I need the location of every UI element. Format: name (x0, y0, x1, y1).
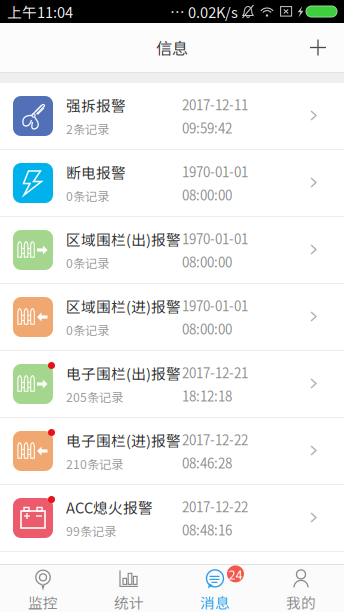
staticText: 1970-01-01 (182, 229, 248, 248)
staticText: 区域围栏(出)报警 (66, 228, 181, 250)
button[interactable]: 我的 (258, 565, 344, 612)
staticText: 上午11:04 (7, 1, 73, 22)
staticText: 1970-01-01 (182, 296, 248, 315)
staticText: 2条记录 (66, 120, 109, 137)
staticText: 210条记录 (66, 455, 123, 472)
staticText: 08:00:00 (182, 319, 232, 338)
staticText: 2017-12-22 (182, 497, 248, 516)
staticText: 监控 (28, 591, 58, 612)
staticText: 统计 (114, 591, 144, 612)
staticText: 205条记录 (66, 388, 123, 405)
button[interactable]: Add (296, 25, 340, 69)
button[interactable]: 统计 (86, 565, 172, 612)
staticText: 0条记录 (66, 321, 109, 338)
staticText: 我的 (286, 591, 316, 612)
staticText: 08:46:28 (182, 453, 232, 472)
button[interactable]: 24 (172, 565, 258, 612)
staticText: 信息 (156, 36, 188, 59)
staticText: 08:48:16 (182, 520, 232, 539)
staticText: 1970-01-01 (182, 162, 248, 181)
staticText: 电子围栏(出)报警 (66, 362, 181, 384)
staticText: 08:00:00 (182, 185, 232, 204)
staticText: ACC熄火报警 (66, 496, 153, 518)
button[interactable]: 电子围栏(出)报警 (0, 351, 344, 417)
staticText: 断电报警 (66, 161, 126, 183)
staticText: … (170, 1, 185, 22)
staticText: 99条记录 (66, 522, 116, 539)
staticText: 0.02K/s (188, 1, 238, 22)
staticText: 2017-12-11 (182, 95, 248, 114)
staticText: 09:59:42 (182, 118, 232, 137)
staticText: 2017-12-21 (182, 363, 248, 382)
button[interactable]: 断电报警 (0, 150, 344, 216)
button[interactable]: ACC熄火报警 (0, 485, 344, 551)
button[interactable]: 区域围栏(进)报警 (0, 284, 344, 350)
staticText: 24 (228, 565, 242, 583)
staticText: 0条记录 (66, 187, 109, 204)
button[interactable]: 强拆报警 (0, 83, 344, 149)
staticText: 强拆报警 (66, 94, 126, 116)
staticText: 区域围栏(进)报警 (66, 295, 181, 317)
staticText: 电子围栏(进)报警 (66, 429, 181, 451)
staticText: 08:00:00 (182, 252, 232, 271)
button[interactable]: 监控 (0, 565, 86, 612)
staticText: 0条记录 (66, 254, 109, 271)
button[interactable]: 区域围栏(出)报警 (0, 217, 344, 283)
staticText: 18:12:18 (182, 386, 232, 405)
staticText: 2017-12-22 (182, 430, 248, 449)
staticText: 消息 (200, 591, 230, 612)
button[interactable]: 电子围栏(进)报警 (0, 418, 344, 484)
